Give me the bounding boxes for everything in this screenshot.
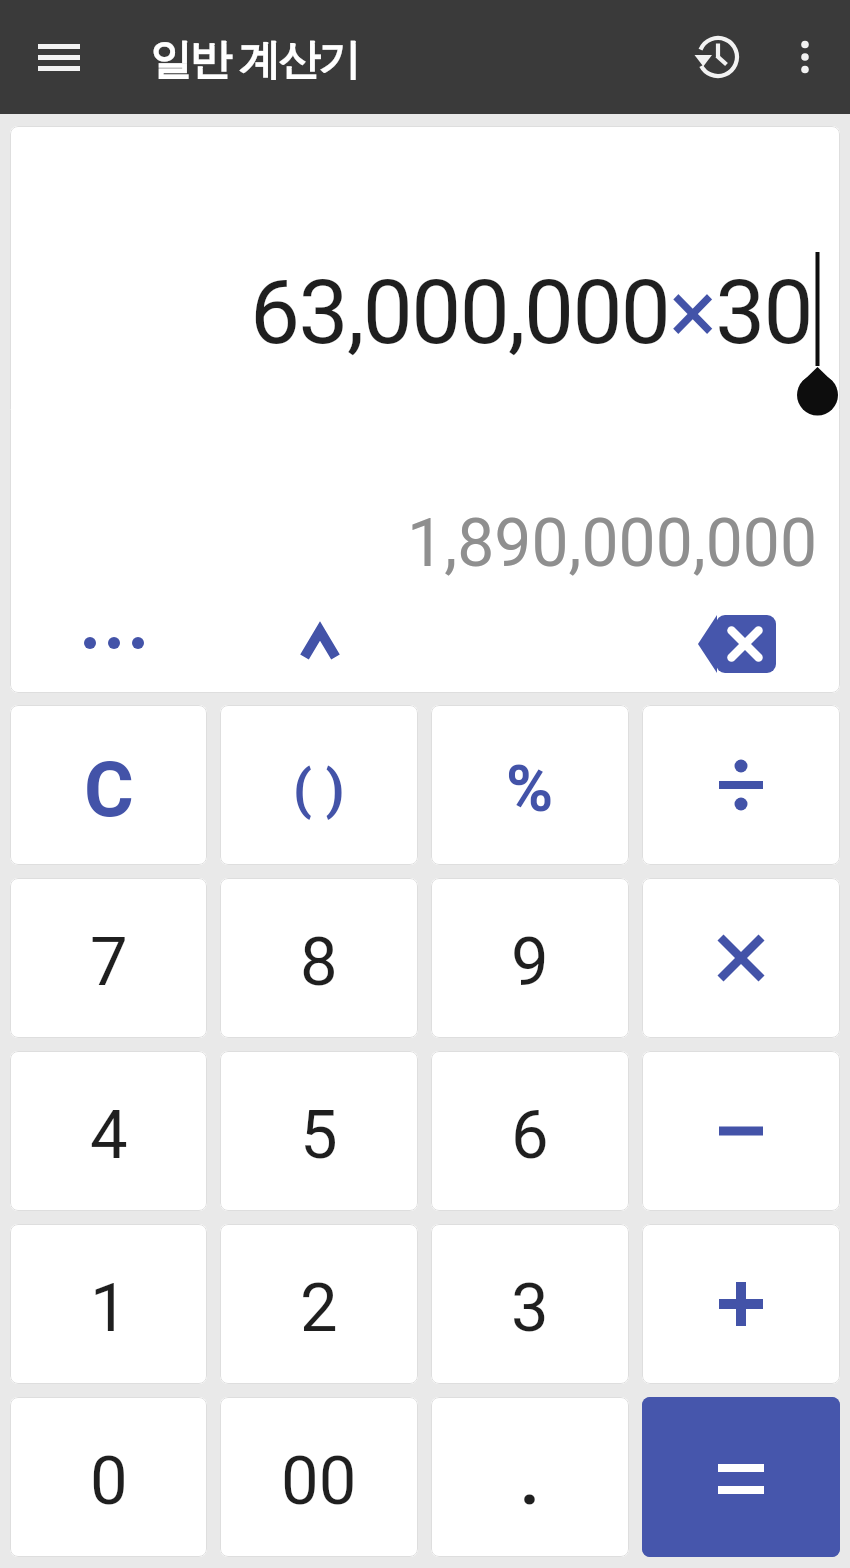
button[interactable] (642, 705, 840, 865)
button[interactable]: 4 (10, 1051, 207, 1211)
staticText: 1 (90, 1269, 128, 1348)
button[interactable]: 3 (431, 1224, 629, 1384)
button[interactable] (781, 27, 829, 87)
button[interactable]: 00 (220, 1397, 418, 1557)
staticText: ( ) (293, 758, 345, 821)
button[interactable] (26, 35, 92, 79)
staticText: 7 (90, 923, 128, 1002)
button[interactable]: ( ) (220, 705, 418, 865)
staticText: 8 (300, 923, 338, 1002)
button[interactable]: 1 (10, 1224, 207, 1384)
button[interactable]: . (431, 1397, 629, 1557)
button[interactable] (642, 878, 840, 1038)
staticText: % (506, 752, 554, 827)
staticText: C (84, 745, 134, 834)
staticText: 4 (90, 1096, 128, 1175)
button[interactable] (695, 611, 779, 677)
button[interactable] (290, 619, 350, 667)
button[interactable]: 7 (10, 878, 207, 1038)
staticText: 9 (511, 923, 549, 1002)
staticText: 2 (300, 1269, 338, 1348)
staticText: 일반 계산기 (150, 29, 358, 86)
staticText: 6 (511, 1096, 549, 1175)
button[interactable]: 8 (220, 878, 418, 1038)
button[interactable]: 5 (220, 1051, 418, 1211)
button[interactable]: 6 (431, 1051, 629, 1211)
staticText: 0 (90, 1442, 128, 1521)
button[interactable] (687, 27, 747, 87)
staticText: 5 (300, 1096, 338, 1175)
button[interactable]: 9 (431, 878, 629, 1038)
staticText: 1,890,000,000 (10, 505, 817, 582)
staticText: . (520, 1442, 540, 1521)
button[interactable] (66, 621, 162, 665)
button[interactable] (642, 1397, 840, 1557)
button[interactable]: 2 (220, 1224, 418, 1384)
button[interactable] (642, 1051, 840, 1211)
button[interactable]: 0 (10, 1397, 207, 1557)
staticText: 00 (281, 1442, 357, 1521)
staticText: 63,000,000×30 (10, 260, 812, 364)
staticText: 3 (511, 1269, 549, 1348)
button[interactable]: C (10, 705, 207, 865)
button[interactable]: % (431, 705, 629, 865)
button[interactable] (642, 1224, 840, 1384)
